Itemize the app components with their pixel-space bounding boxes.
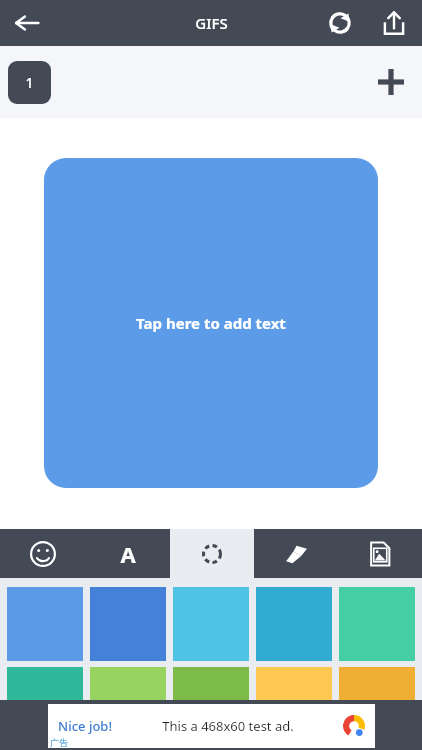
button[interactable]: Stickers <box>0 529 85 578</box>
staticText: 广告 <box>50 737 68 748</box>
staticText: GIFS <box>195 13 228 33</box>
button[interactable]: Image <box>338 529 422 578</box>
staticText: Tap here to add text <box>136 313 286 333</box>
button[interactable]: Text <box>85 529 170 578</box>
button[interactable]: Share <box>366 0 422 46</box>
button[interactable]: 1 <box>8 61 51 104</box>
staticText: A <box>120 539 136 569</box>
button[interactable]: Brush <box>254 529 338 578</box>
button[interactable]: Color <box>170 529 254 578</box>
staticText: This a 468x60 test ad. <box>162 717 294 735</box>
button[interactable]: Nice job! <box>48 704 375 748</box>
button[interactable]: Tap here to add text <box>44 158 378 488</box>
staticText: Nice job! <box>58 717 112 735</box>
button[interactable]: Back <box>0 0 54 46</box>
button[interactable]: Refresh <box>314 0 366 46</box>
staticText: 1 <box>25 73 34 92</box>
button[interactable]: Add frame <box>360 46 422 118</box>
